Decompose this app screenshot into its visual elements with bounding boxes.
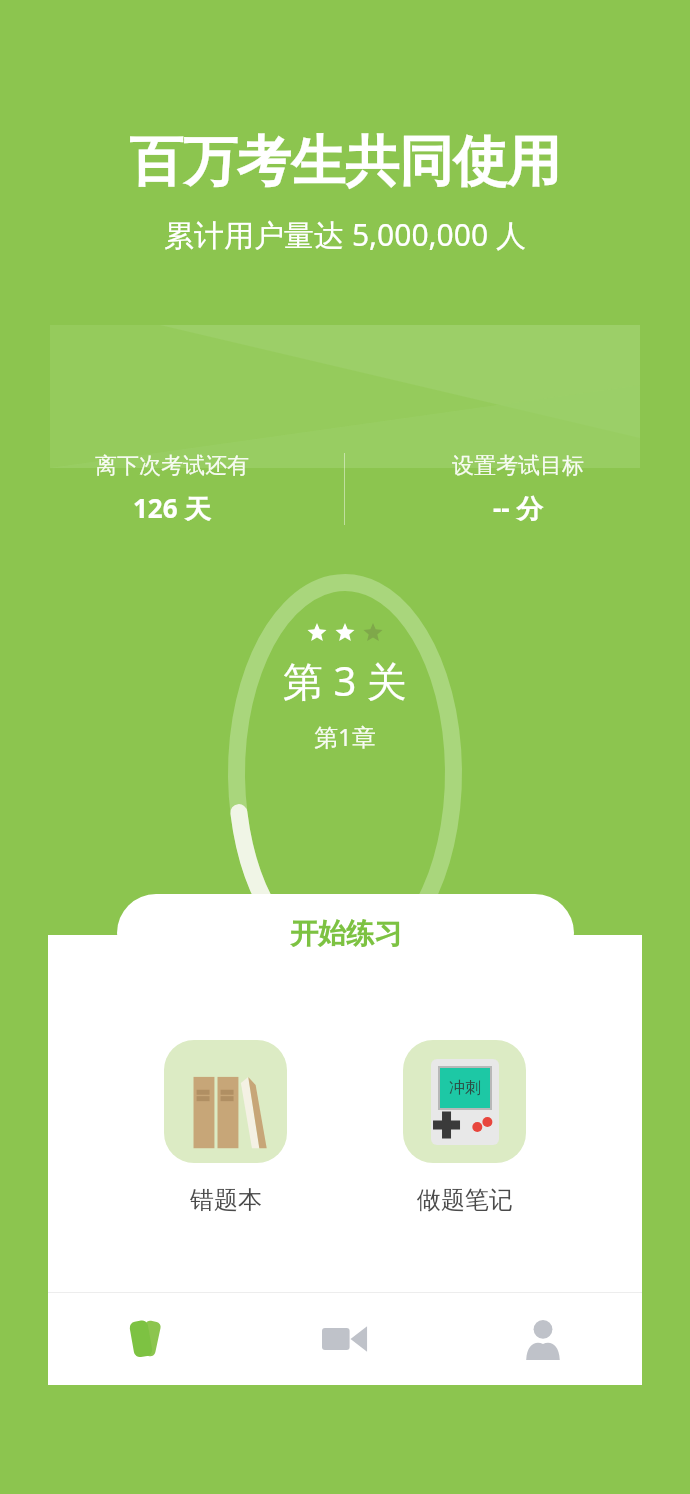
button[interactable]: 冲刺	[403, 1040, 526, 1215]
staticText: 设置考试目标	[452, 452, 584, 480]
button[interactable]: 开始练习	[117, 894, 574, 972]
staticText: 冲刺	[449, 1078, 481, 1098]
button[interactable]: Profile	[444, 1293, 642, 1385]
button[interactable]: 设置考试目标	[345, 449, 690, 529]
button[interactable]: 离下次考试还有	[0, 449, 344, 529]
staticText: 错题本	[190, 1185, 262, 1215]
staticText: 开始练习	[290, 916, 402, 951]
staticText: -- 分	[493, 490, 543, 526]
button[interactable]: Video	[246, 1293, 444, 1385]
staticText: 做题笔记	[417, 1185, 513, 1215]
staticText: 126 天	[133, 490, 211, 526]
button[interactable]: 第 3 关	[227, 573, 463, 773]
staticText: 第1章	[314, 720, 376, 753]
staticText: 百万考生共同使用	[129, 128, 561, 196]
button[interactable]: 错题本	[164, 1040, 287, 1215]
staticText: 累计用户量达 5,000,000 人	[164, 214, 526, 255]
staticText: 第 3 关	[283, 653, 407, 708]
staticText: 离下次考试还有	[95, 452, 249, 480]
button[interactable]: Cards	[48, 1293, 246, 1385]
